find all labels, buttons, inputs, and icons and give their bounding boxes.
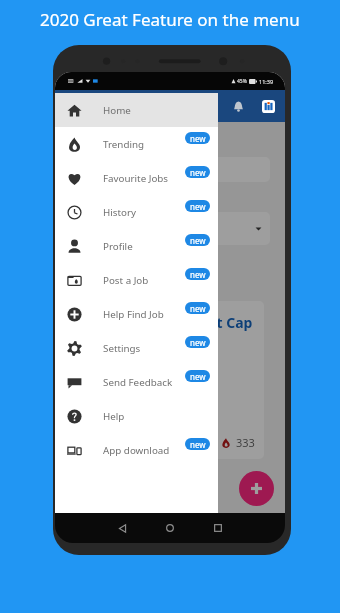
button[interactable]: Send Feedback [55,365,218,399]
button[interactable]: Settings [55,331,218,365]
staticText: Settings [103,342,141,355]
button[interactable]: Home [157,515,183,541]
staticText: 333 [236,435,255,450]
staticText: Trending [103,138,145,151]
staticText: new [190,235,206,246]
staticText: new [190,201,206,212]
staticText: new [190,439,206,450]
staticText: 11:39 [259,78,274,85]
button[interactable]: Search jobs [70,157,270,182]
button[interactable]: Home [55,93,218,127]
staticText: Search jobs [77,164,126,176]
button[interactable]: Live Crypto Market Cap [69,301,264,459]
staticText: new [190,337,206,348]
button[interactable]: Profile [55,229,218,263]
staticText: Profile [103,240,133,253]
staticText: Help [103,410,125,423]
staticText: Post a Job [103,274,149,287]
button[interactable]: Stories [256,94,280,118]
staticText: Help Find Job [103,308,164,321]
staticText: Live Crypto Market Cap [89,313,253,332]
button[interactable]: Recent apps [205,515,231,541]
button[interactable]: Help Find Job [55,297,218,331]
button[interactable]: Help [55,399,218,433]
button[interactable]: Notifications [226,94,250,118]
staticText: Send Feedback [103,376,173,389]
staticText: 2020 Great Feature on the menu [40,8,300,31]
staticText: new [190,371,206,382]
button[interactable]: All categories [70,212,270,245]
staticText: new [190,167,206,178]
staticText: History [103,206,136,219]
staticText: new [190,133,206,144]
staticText: 45% [237,78,247,85]
staticText: Favourite Jobs [103,172,169,185]
button[interactable]: Trending [55,127,218,161]
button[interactable]: Favourite Jobs [55,161,218,195]
staticText: new [190,303,206,314]
staticText: Full time - Remote work [89,339,194,351]
staticText: Home [103,104,131,117]
staticText: new [190,269,206,280]
button[interactable]: Post a Job [55,263,218,297]
button[interactable]: Add [239,471,274,506]
button[interactable]: History [55,195,218,229]
button[interactable]: App download [55,433,218,467]
staticText: App download [103,444,170,457]
button[interactable]: Back [109,515,135,541]
